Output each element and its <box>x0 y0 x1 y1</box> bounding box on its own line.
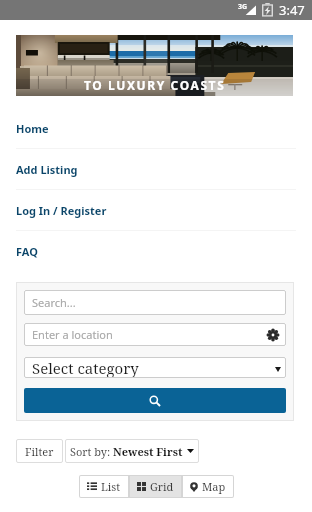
staticText: Newest First <box>113 444 183 459</box>
button[interactable]: Grid <box>129 475 182 498</box>
staticText: TO LUXURY COASTS <box>84 77 226 93</box>
button[interactable]: Map <box>182 475 234 498</box>
staticText: FAQ <box>16 244 38 259</box>
staticText: List <box>101 479 121 494</box>
staticText: Home <box>16 121 49 136</box>
staticText: Enter a location <box>32 327 113 342</box>
staticText: Grid <box>150 479 174 494</box>
button[interactable]: Filter <box>16 439 63 463</box>
button[interactable]: Search... <box>24 290 286 315</box>
button[interactable]: Search <box>24 388 286 413</box>
button[interactable]: FAQ <box>16 231 296 271</box>
button[interactable]: Home <box>16 109 296 148</box>
staticText: Search... <box>32 295 76 310</box>
staticText: Filter <box>25 444 54 459</box>
staticText: Map <box>202 479 226 494</box>
button[interactable]: List <box>79 475 129 498</box>
staticText: 3:47 <box>279 1 305 19</box>
staticText: 3G <box>238 2 248 12</box>
button[interactable]: Select category <box>24 357 286 378</box>
button[interactable]: Enter a location <box>24 323 286 346</box>
staticText: Select category <box>32 358 139 378</box>
staticText: Log In / Register <box>16 203 107 218</box>
button[interactable]: Add Listing <box>16 149 296 189</box>
button[interactable]: Log In / Register <box>16 190 296 230</box>
staticText: Add Listing <box>16 162 78 177</box>
button[interactable]: Sort by: <box>65 439 199 463</box>
staticText: Sort by: <box>70 444 113 459</box>
other: Location settings <box>267 329 279 341</box>
